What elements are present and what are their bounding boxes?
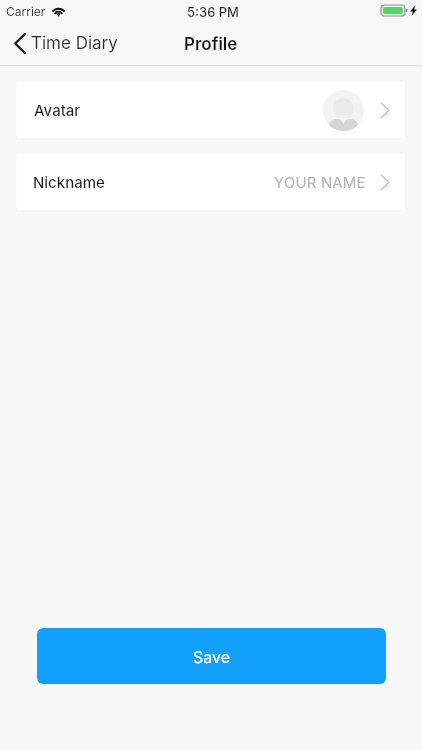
staticText: Avatar [34, 101, 81, 119]
button[interactable]: Nickname [17, 154, 405, 210]
button[interactable]: Avatar [17, 82, 405, 138]
other: Open [380, 174, 390, 191]
staticText: Carrier [6, 4, 46, 19]
staticText: Nickname [33, 173, 105, 191]
staticText: Profile [184, 34, 238, 55]
button[interactable]: Save [37, 628, 386, 684]
staticText: YOUR NAME [274, 173, 366, 191]
other: Open [380, 102, 390, 119]
button[interactable]: Back to Time Diary [0, 23, 104, 57]
staticText: 5:36 PM [187, 4, 239, 20]
staticText: Save [193, 647, 231, 666]
staticText: Time Diary [31, 33, 118, 54]
